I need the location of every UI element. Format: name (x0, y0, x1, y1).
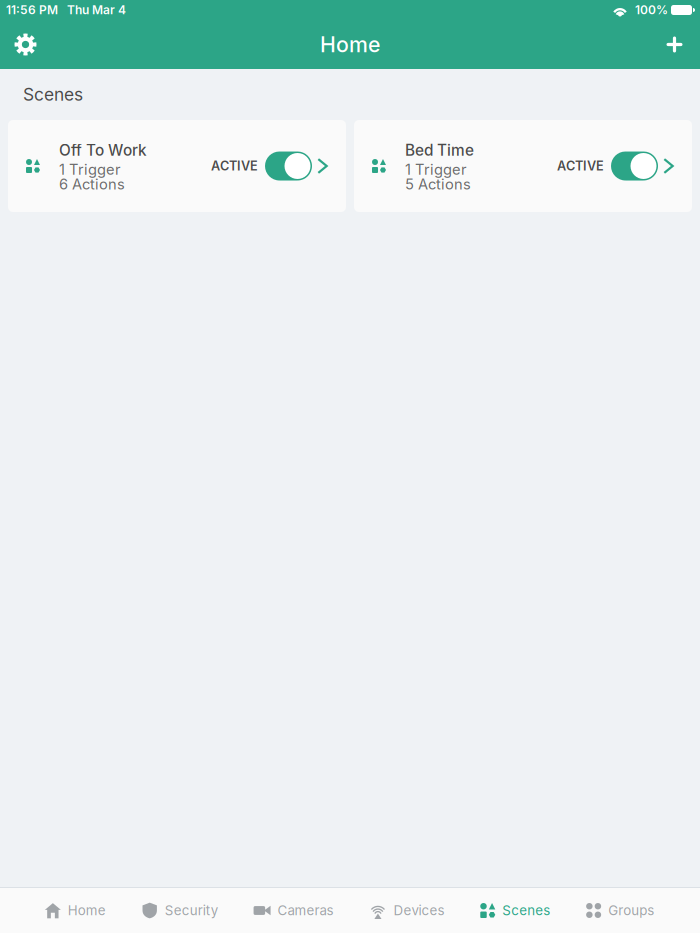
staticText: 1 Trigger (405, 160, 467, 178)
button[interactable]: Home (45, 887, 106, 933)
staticText: Home (68, 902, 106, 918)
staticText: 5 Actions (405, 175, 471, 193)
staticText: 100% (635, 3, 668, 17)
staticText: Security (165, 902, 218, 918)
button[interactable]: Settings (1, 20, 50, 69)
staticText: Thu Mar 4 (67, 3, 126, 17)
button[interactable]: Devices (369, 887, 444, 933)
button[interactable]: Scenes (480, 887, 550, 933)
staticText: 1 Trigger (59, 160, 121, 178)
staticText: Groups (608, 902, 654, 918)
staticText: Cameras (278, 902, 334, 918)
staticText: Home (320, 32, 380, 57)
staticText: Off To Work (59, 141, 147, 160)
button[interactable]: Security (142, 887, 218, 933)
button[interactable]: Add (650, 20, 699, 69)
button[interactable]: Bed Time (354, 120, 692, 212)
button[interactable]: Groups (586, 887, 654, 933)
staticText: Scenes (23, 84, 83, 105)
button[interactable]: Cameras (254, 887, 334, 933)
staticText: ACTIVE (557, 158, 604, 174)
button[interactable]: Off To Work (8, 120, 346, 212)
staticText: 6 Actions (59, 175, 125, 193)
staticText: 11:56 PM (6, 3, 58, 17)
staticText: ACTIVE (211, 158, 258, 174)
staticText: Devices (393, 902, 444, 918)
staticText: Scenes (502, 902, 550, 918)
staticText: Bed Time (405, 141, 474, 160)
